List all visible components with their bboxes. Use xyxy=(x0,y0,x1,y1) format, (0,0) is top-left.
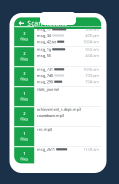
staticText: msg_290 xyxy=(37,79,53,84)
button[interactable]: msg_17 xyxy=(34,26,101,32)
button[interactable]: msg_42.txt xyxy=(34,39,101,45)
staticText: files xyxy=(20,136,28,141)
staticText: 1 xyxy=(23,151,25,156)
staticText: 1 xyxy=(23,131,25,136)
staticText: achievement_s.deps.mp3 xyxy=(37,107,81,112)
staticText: files xyxy=(20,96,28,101)
staticText: 3 xyxy=(23,31,25,36)
staticText: files xyxy=(20,156,28,161)
staticText: 2 xyxy=(23,51,25,56)
staticText: msg_34 xyxy=(37,33,51,38)
staticText: Scan Results xyxy=(27,19,67,28)
staticText: 10:04 am xyxy=(83,39,99,44)
button[interactable]: msg_2611 xyxy=(34,146,101,152)
staticText: countdown.mp3 xyxy=(37,113,64,118)
staticText: msg_1g xyxy=(37,47,51,52)
staticText: files xyxy=(20,116,28,121)
button[interactable]: msg_731 xyxy=(34,66,101,72)
button[interactable]: msg_7d0 xyxy=(34,72,101,79)
button[interactable]: msg_34 xyxy=(34,32,101,39)
staticText: msg_17 xyxy=(37,27,51,32)
button[interactable]: achievement_s.deps.mp3 xyxy=(34,106,101,112)
staticText: msg_731 xyxy=(37,67,53,72)
staticText: 7:03 pm xyxy=(85,73,99,78)
button[interactable]: msg_1g xyxy=(34,46,101,52)
staticText: rec.mp4 xyxy=(37,127,52,132)
staticText: 7:04 am xyxy=(85,79,99,84)
button[interactable]: countdown.mp3 xyxy=(34,112,101,119)
button[interactable]: msg_55 xyxy=(34,52,101,59)
staticText: files xyxy=(20,56,28,61)
staticText: msg_55 xyxy=(37,53,51,58)
staticText: 1 xyxy=(23,91,25,96)
button[interactable]: Back xyxy=(17,17,25,29)
staticText: msg_42.txt xyxy=(37,39,56,44)
button[interactable]: msg_290 xyxy=(34,79,101,85)
staticText: 3 xyxy=(23,71,25,76)
button[interactable]: rec.mp4 xyxy=(34,126,101,132)
staticText: 2 xyxy=(23,111,25,116)
staticText: msg_7d0 xyxy=(37,73,53,78)
staticText: files xyxy=(20,36,28,41)
staticText: 10:06 am xyxy=(83,67,99,72)
button[interactable]: stats_journal xyxy=(34,86,101,92)
staticText: files xyxy=(20,76,28,81)
staticText: 4:05 pm xyxy=(85,33,99,38)
staticText: 9:02 am xyxy=(85,47,99,52)
staticText: 11:04 am xyxy=(83,147,99,152)
staticText: 4:04 am xyxy=(85,53,99,58)
staticText: 9:06 am xyxy=(85,27,99,32)
staticText: stats_journal xyxy=(37,87,59,92)
staticText: msg_2611 xyxy=(37,147,55,152)
